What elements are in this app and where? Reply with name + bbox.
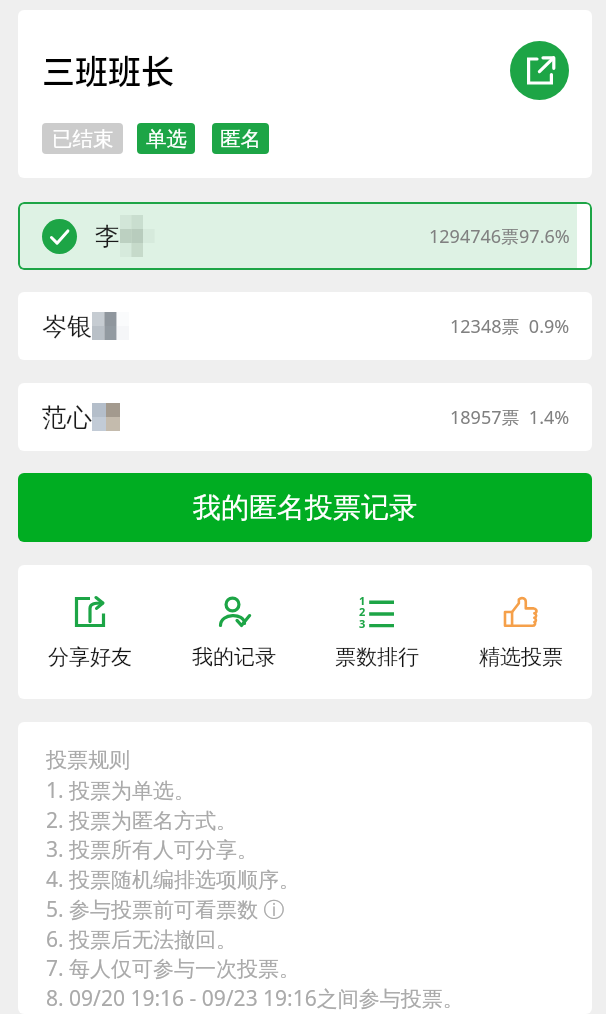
staticText: 18957票 1.4%	[450, 405, 570, 430]
button[interactable]: 1	[305, 597, 448, 670]
staticText: 2. 投票为匿名方式。	[46, 806, 238, 835]
button[interactable]: 已结束	[42, 123, 123, 154]
staticText: 3. 投票所有人可分享。	[46, 835, 259, 864]
staticText: 2	[359, 604, 366, 619]
button[interactable]: 岑银	[18, 292, 592, 360]
staticText: 范心	[42, 402, 92, 433]
staticText: 我的匿名投票记录	[193, 490, 417, 525]
button[interactable]: 单选	[137, 123, 195, 154]
button[interactable]: 李	[18, 202, 592, 270]
staticText: 已结束	[52, 126, 114, 152]
button[interactable]: 分享	[510, 41, 569, 100]
staticText: 6. 投票后无法撤回。	[46, 925, 238, 954]
staticText: 1294746票97.6%	[429, 224, 570, 249]
staticText: 7. 每人仅可参与一次投票。	[46, 954, 301, 983]
button[interactable]: 匿名	[212, 123, 269, 154]
button[interactable]: 分享好友	[18, 597, 161, 670]
staticText: 匿名	[220, 126, 261, 152]
button[interactable]: 精选投票	[449, 597, 592, 670]
staticText: 三班班长	[42, 46, 174, 94]
staticText: 5. 参与投票前可看票数 ⓘ	[46, 895, 285, 924]
staticText: 单选	[146, 126, 187, 152]
staticText: 1	[359, 593, 366, 608]
button[interactable]: 我的匿名投票记录	[18, 473, 592, 542]
staticText: 投票规则	[46, 747, 130, 773]
staticText: 12348票 0.9%	[450, 314, 570, 339]
staticText: 4. 投票随机编排选项顺序。	[46, 865, 301, 894]
staticText: 李	[95, 221, 120, 252]
staticText: 分享好友	[48, 644, 132, 670]
staticText: 岑银	[42, 311, 92, 342]
button[interactable]: 范心	[18, 383, 592, 451]
staticText: 精选投票	[479, 644, 563, 670]
staticText: 3	[359, 616, 366, 631]
staticText: 票数排行	[335, 644, 419, 670]
staticText: 8. 09/20 19:16 - 09/23 19:16之间参与投票。	[46, 984, 464, 1013]
button[interactable]: 我的记录	[162, 597, 305, 670]
staticText: 1. 投票为单选。	[46, 776, 196, 805]
staticText: 我的记录	[192, 644, 276, 670]
